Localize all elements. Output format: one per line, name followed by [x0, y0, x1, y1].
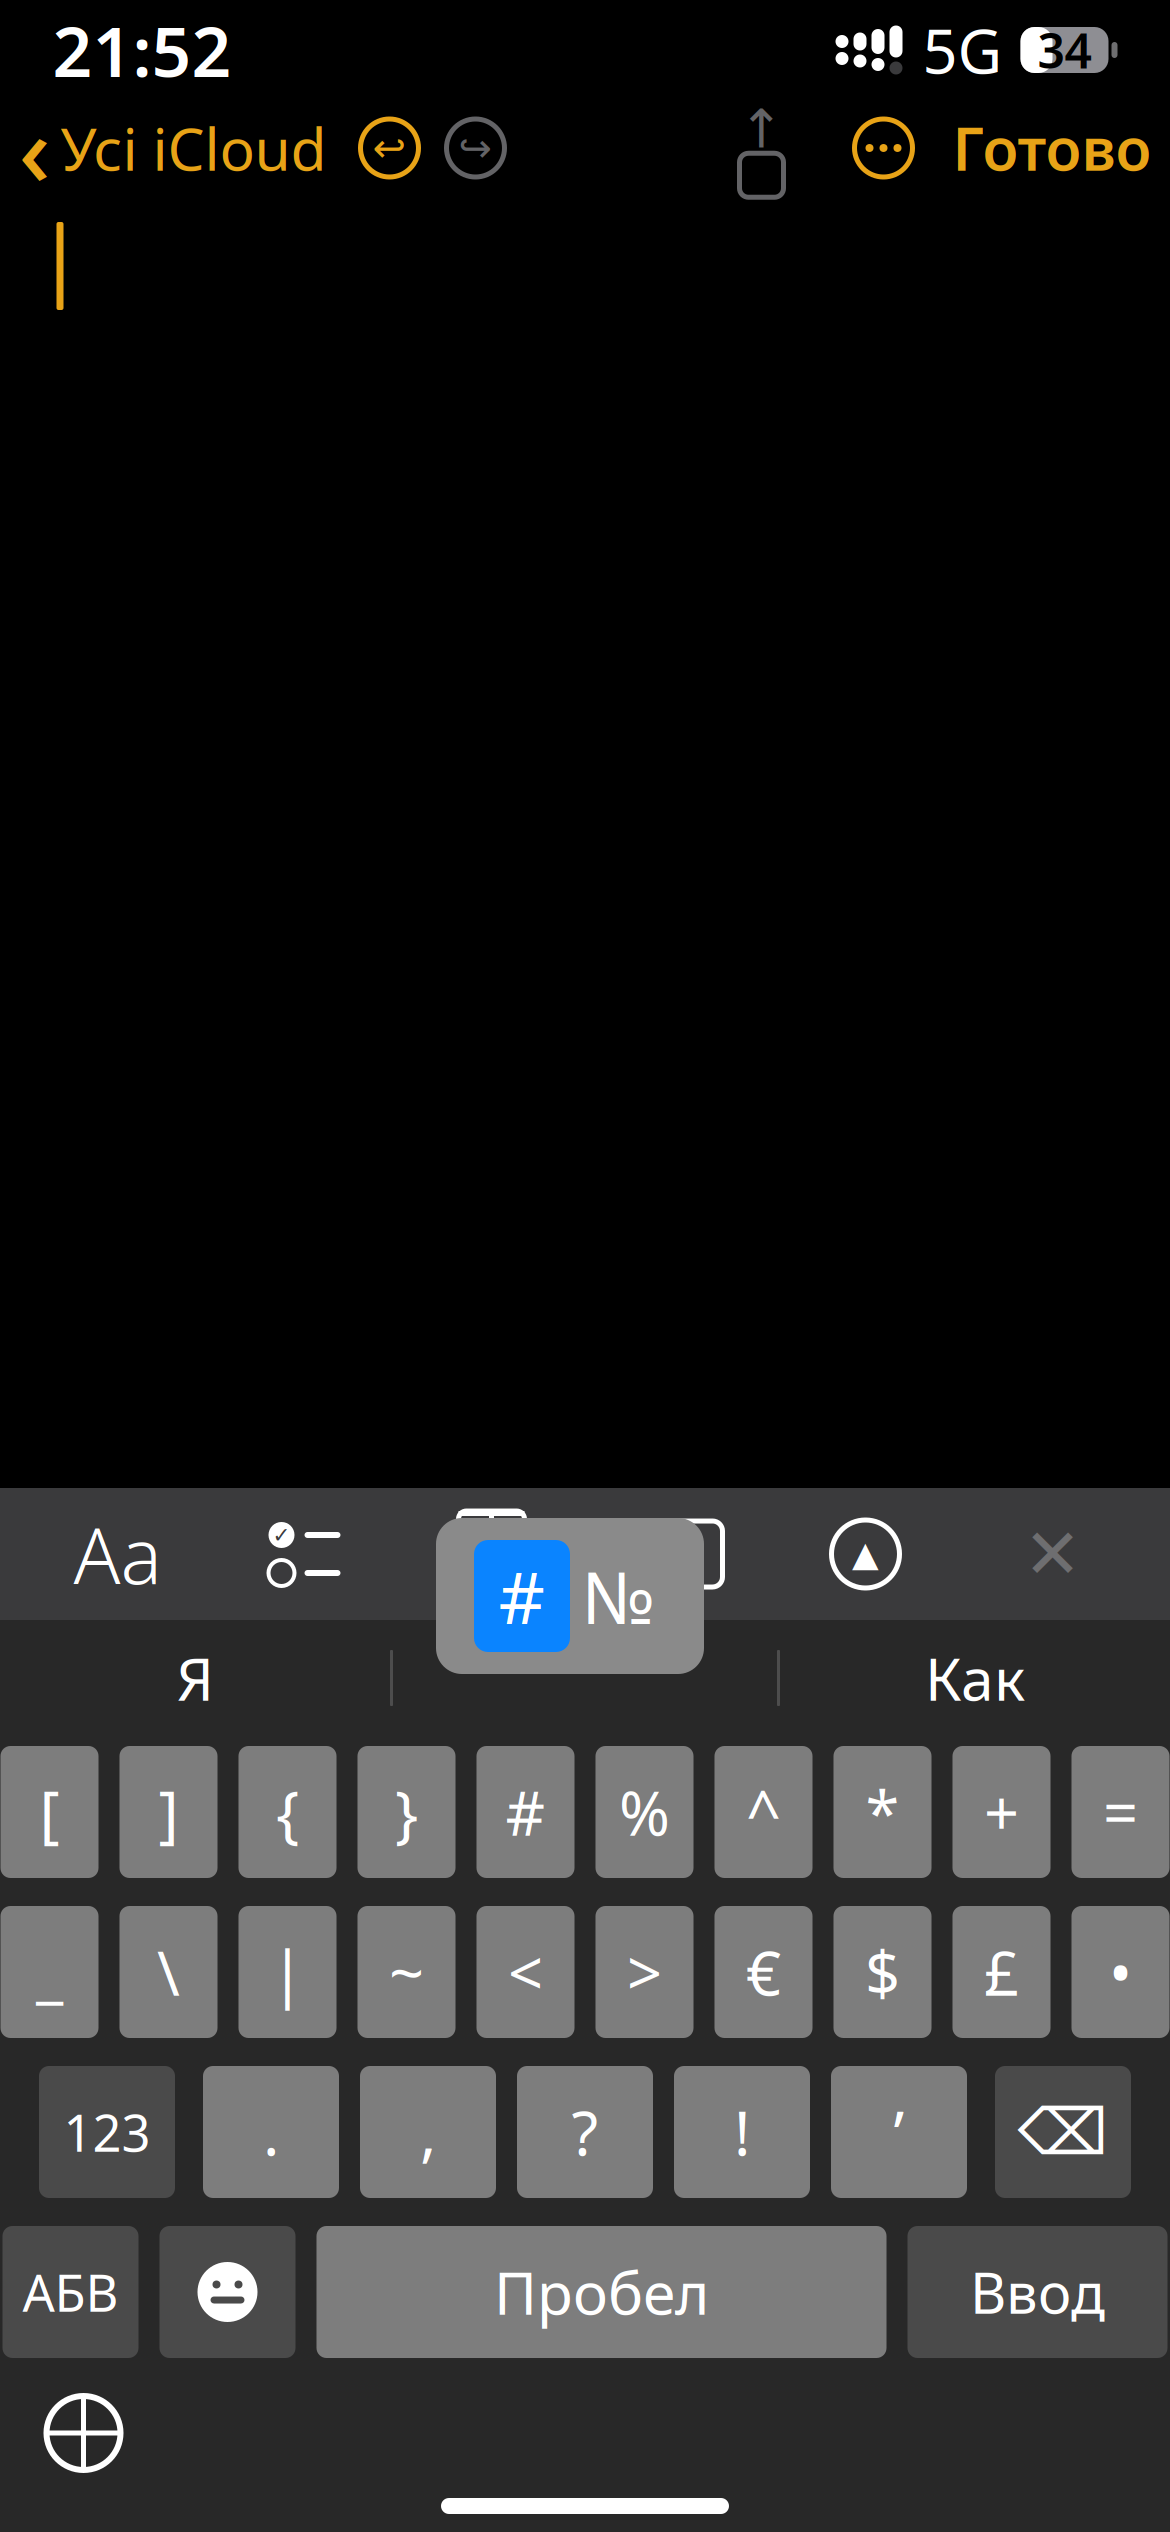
- staticText: ⌫: [1017, 2096, 1108, 2168]
- staticText: #: [505, 1771, 545, 1853]
- staticText: ↩: [372, 125, 406, 171]
- staticText: [: [39, 1771, 59, 1853]
- button[interactable]: Пробел: [316, 2226, 886, 2358]
- button[interactable]: >: [595, 1906, 693, 2038]
- button[interactable]: ^: [714, 1746, 812, 1878]
- staticText: +: [984, 1771, 1019, 1853]
- staticText: $: [865, 1931, 900, 2013]
- staticText: =: [1103, 1771, 1138, 1853]
- staticText: 21:52: [52, 4, 231, 96]
- button[interactable]: Change keyboard: [28, 2378, 138, 2488]
- button[interactable]: Undo: [360, 119, 418, 177]
- button[interactable]: }: [357, 1746, 455, 1878]
- button[interactable]: Share: [732, 117, 790, 179]
- staticText: ^: [746, 1771, 781, 1853]
- staticText: €: [746, 1931, 781, 2013]
- staticText: Пробел: [494, 2253, 709, 2331]
- button[interactable]: ,: [360, 2066, 496, 2198]
- button[interactable]: Markup: [805, 1488, 925, 1620]
- staticText: £: [984, 1931, 1019, 2013]
- button[interactable]: Emoji: [159, 2226, 295, 2358]
- button[interactable]: Ввод: [907, 2226, 1167, 2358]
- button[interactable]: Camera: [618, 1488, 738, 1620]
- staticText: 123: [63, 2098, 150, 2166]
- button[interactable]: =: [1071, 1746, 1169, 1878]
- staticText: Готово: [952, 109, 1151, 187]
- staticText: .: [263, 2091, 279, 2173]
- button[interactable]: Suggestion: [393, 1620, 777, 1736]
- staticText: •: [1109, 1931, 1132, 2013]
- staticText: ↪: [458, 125, 492, 171]
- button[interactable]: €: [714, 1906, 812, 2038]
- button[interactable]: ?: [517, 2066, 653, 2198]
- staticText: Aa: [73, 1503, 161, 1605]
- button[interactable]: \: [119, 1906, 217, 2038]
- button[interactable]: Checklist: [244, 1488, 364, 1620]
- button[interactable]: 123: [39, 2066, 175, 2198]
- staticText: ✓: [272, 1523, 290, 1547]
- staticText: !: [734, 2091, 750, 2173]
- button[interactable]: .: [203, 2066, 339, 2198]
- staticText: >: [627, 1931, 662, 2013]
- staticText: {: [276, 1771, 299, 1853]
- button[interactable]: ‹: [18, 74, 326, 221]
- staticText: ]: [158, 1771, 178, 1853]
- staticText: АБВ: [22, 2258, 118, 2326]
- button[interactable]: Готово: [952, 101, 1151, 195]
- staticText: ?: [571, 2091, 598, 2173]
- staticText: Я: [176, 1639, 213, 1717]
- button[interactable]: <: [476, 1906, 574, 2038]
- button[interactable]: $: [833, 1906, 931, 2038]
- button[interactable]: Как: [780, 1620, 1170, 1736]
- staticText: _: [36, 1931, 63, 2013]
- button[interactable]: £: [952, 1906, 1050, 2038]
- button[interactable]: _: [0, 1906, 98, 2038]
- staticText: %: [619, 1771, 670, 1853]
- staticText: ~: [389, 1931, 424, 2013]
- staticText: Усі iCloud: [60, 109, 326, 187]
- button[interactable]: #: [476, 1746, 574, 1878]
- button[interactable]: Close keyboard: [992, 1488, 1112, 1620]
- staticText: #: [498, 1548, 545, 1644]
- staticText: ▲: [852, 1534, 879, 1574]
- button[interactable]: •: [1071, 1906, 1169, 2038]
- staticText: \: [157, 1931, 180, 2013]
- staticText: Как: [925, 1639, 1025, 1717]
- button[interactable]: Table: [431, 1488, 551, 1620]
- button[interactable]: %: [595, 1746, 693, 1878]
- staticText: |: [270, 1931, 304, 2013]
- button[interactable]: ]: [119, 1746, 217, 1878]
- button[interactable]: More: [854, 119, 912, 177]
- staticText: ,: [420, 2091, 436, 2173]
- button[interactable]: Text format: [57, 1488, 177, 1620]
- button[interactable]: [: [0, 1746, 98, 1878]
- staticText: 5G: [922, 9, 1002, 91]
- button[interactable]: Redo: [446, 119, 504, 177]
- staticText: №: [581, 1548, 654, 1644]
- button[interactable]: {: [238, 1746, 336, 1878]
- button[interactable]: ’: [831, 2066, 967, 2198]
- staticText: ✕: [1023, 1515, 1081, 1593]
- staticText: }: [395, 1771, 418, 1853]
- staticText: ’: [893, 2091, 904, 2173]
- button[interactable]: ~: [357, 1906, 455, 2038]
- staticText: <: [508, 1931, 543, 2013]
- staticText: ↑: [739, 99, 784, 159]
- staticText: *: [865, 1771, 899, 1853]
- staticText: ‹: [18, 82, 50, 213]
- button[interactable]: Delete: [995, 2066, 1131, 2198]
- button[interactable]: Я: [0, 1620, 390, 1736]
- button[interactable]: +: [952, 1746, 1050, 1878]
- staticText: Ввод: [970, 2255, 1105, 2329]
- button[interactable]: *: [833, 1746, 931, 1878]
- staticText: 34: [1037, 18, 1091, 82]
- button[interactable]: АБВ: [2, 2226, 138, 2358]
- button[interactable]: !: [674, 2066, 810, 2198]
- button[interactable]: |: [238, 1906, 336, 2038]
